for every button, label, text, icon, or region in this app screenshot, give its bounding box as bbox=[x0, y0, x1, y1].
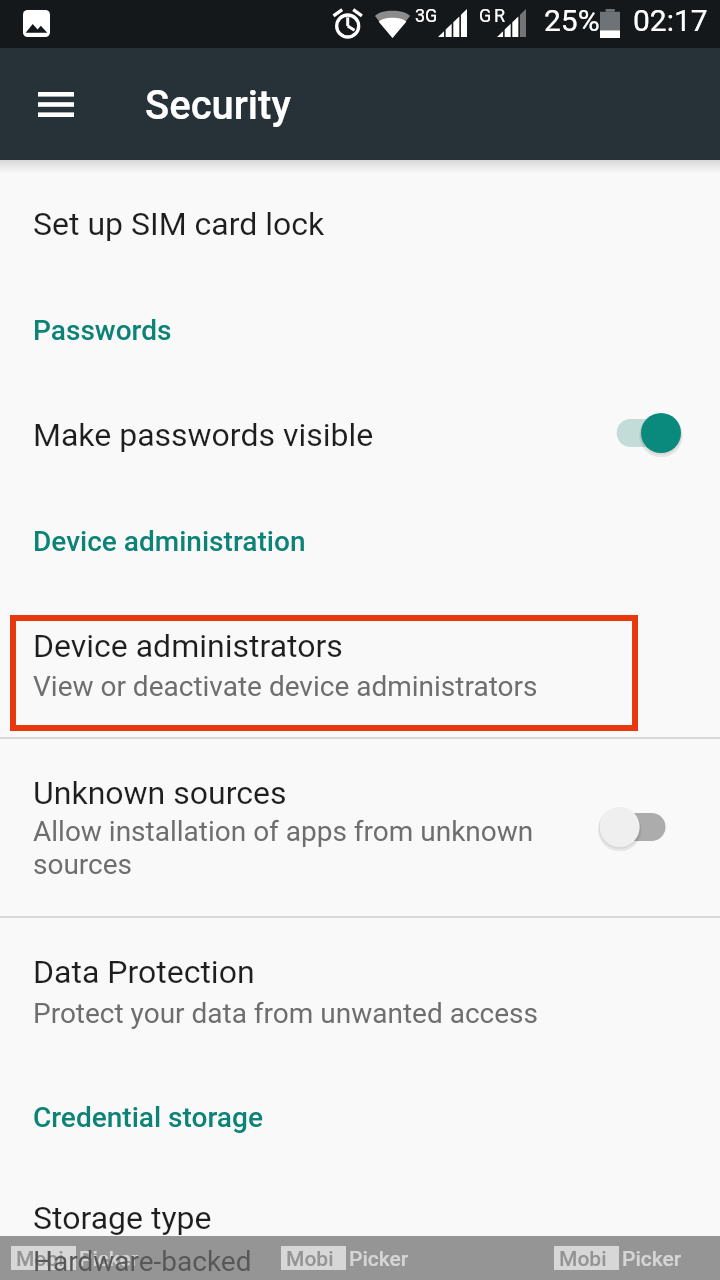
button[interactable]: Make passwords visible bbox=[0, 392, 720, 496]
button[interactable]: Device administrators bbox=[0, 615, 720, 731]
staticText: Mobi bbox=[286, 1247, 334, 1272]
staticText: Make passwords visible bbox=[33, 416, 374, 454]
staticText: Protect your data from unwanted access bbox=[33, 997, 538, 1030]
staticText: R bbox=[494, 5, 506, 26]
staticText: 02:17 bbox=[633, 3, 708, 38]
button[interactable]: Switch, on bbox=[592, 403, 692, 463]
button[interactable]: Storage type bbox=[0, 1186, 720, 1280]
staticText: View or deactivate device administrators bbox=[33, 670, 538, 703]
staticText: Mobi bbox=[559, 1247, 607, 1272]
staticText: Passwords bbox=[33, 314, 172, 347]
staticText: Unknown sources bbox=[33, 774, 287, 812]
staticText: Security bbox=[145, 82, 291, 129]
staticText: Device administration bbox=[33, 525, 306, 558]
staticText: Mobi bbox=[16, 1247, 64, 1272]
staticText: Credential storage bbox=[33, 1101, 263, 1134]
staticText: Picker bbox=[622, 1247, 682, 1272]
staticText: Device administrators bbox=[33, 627, 343, 665]
staticText: Allow installation of apps from unknown … bbox=[33, 815, 534, 881]
staticText: Storage type bbox=[33, 1199, 212, 1237]
staticText: Hardware-backed bbox=[33, 1245, 252, 1278]
staticText: Set up SIM card lock bbox=[33, 205, 325, 243]
button[interactable]: Data Protection bbox=[0, 940, 720, 1060]
button[interactable]: Switch, off bbox=[592, 797, 692, 857]
staticText: Picker bbox=[349, 1247, 409, 1272]
staticText: Picker bbox=[79, 1247, 139, 1272]
button[interactable]: Unknown sources bbox=[0, 750, 720, 910]
staticText: Data Protection bbox=[33, 953, 255, 991]
staticText: 25% bbox=[544, 3, 600, 38]
staticText: G bbox=[479, 5, 492, 26]
staticText: 3G bbox=[415, 5, 438, 26]
button[interactable]: Set up SIM card lock bbox=[0, 160, 720, 264]
button[interactable]: Open navigation drawer bbox=[20, 64, 92, 144]
